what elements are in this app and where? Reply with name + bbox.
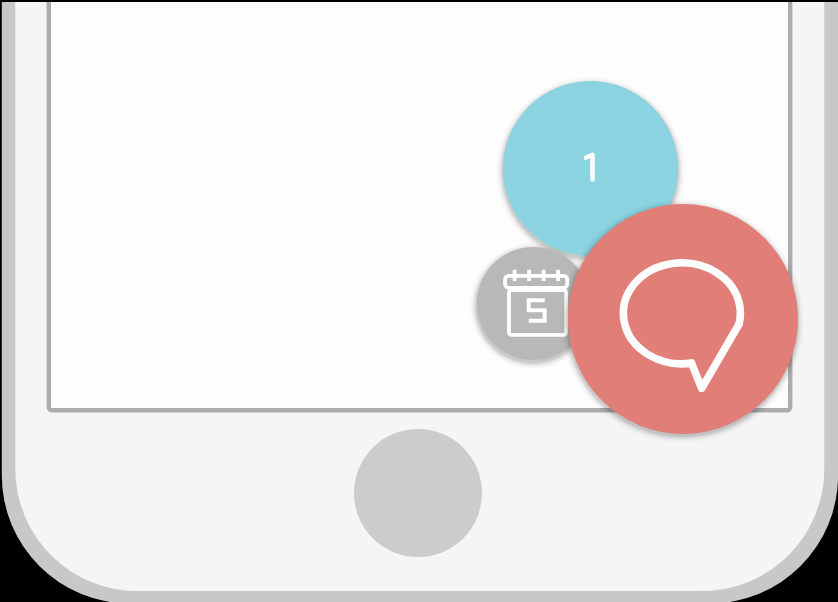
button[interactable]: Open chat (568, 204, 798, 434)
button[interactable]: 1 unread message (503, 81, 678, 256)
button[interactable]: Home (354, 429, 482, 557)
button[interactable]: Calendar, day 5 (477, 247, 590, 360)
